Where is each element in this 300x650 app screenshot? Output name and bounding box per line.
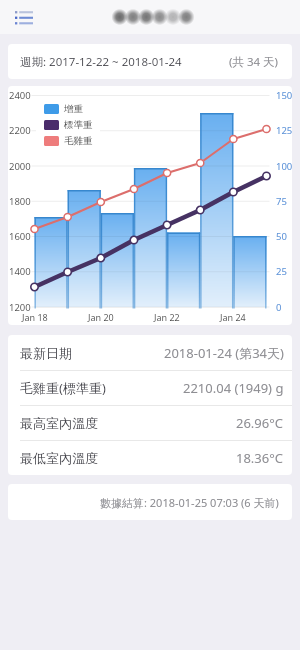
staticText: 125 bbox=[276, 124, 292, 137]
staticText: 標準重 bbox=[64, 119, 93, 131]
staticText: 毛雞重(標準重) bbox=[20, 379, 106, 397]
staticText: 25 bbox=[276, 265, 287, 278]
staticText: 2400 bbox=[9, 89, 31, 102]
button[interactable]: 毛雞重(標準重) bbox=[8, 370, 292, 405]
staticText: 1600 bbox=[9, 230, 31, 243]
staticText: 最新日期 bbox=[20, 345, 72, 361]
staticText: 增重 bbox=[64, 103, 83, 115]
staticText: 75 bbox=[276, 195, 287, 208]
staticText: 1200 bbox=[9, 301, 31, 314]
staticText: 最低室內溫度 bbox=[20, 450, 98, 466]
staticText: 0 bbox=[276, 301, 282, 314]
staticText: 2000 bbox=[9, 160, 31, 173]
staticText: 2210.04 (1949) g bbox=[183, 379, 284, 397]
staticText: Jan 20 bbox=[88, 311, 114, 323]
button[interactable]: Menu bbox=[9, 0, 39, 34]
staticText: 1400 bbox=[9, 265, 31, 278]
button[interactable]: 最高室內溫度 bbox=[8, 405, 292, 440]
staticText: Jan 22 bbox=[154, 311, 180, 323]
button[interactable]: 週期: 2017-12-22 ~ 2018-01-24 bbox=[8, 44, 292, 79]
staticText: Jan 24 bbox=[220, 311, 246, 323]
button[interactable]: 最新日期 bbox=[8, 335, 292, 370]
staticText: (共 34 天) bbox=[229, 54, 279, 70]
button[interactable]: 數據結算: 2018-01-25 07:03 (6 天前) bbox=[8, 484, 292, 520]
staticText: 2200 bbox=[9, 124, 31, 137]
staticText: Jan 18 bbox=[22, 311, 48, 323]
staticText: 數據結算: 2018-01-25 07:03 (6 天前) bbox=[100, 495, 279, 510]
staticText: 毛雞重 bbox=[64, 135, 93, 147]
staticText: 26.96°C bbox=[236, 414, 284, 432]
button[interactable]: 最低室內溫度 bbox=[8, 440, 292, 475]
staticText: 1800 bbox=[9, 195, 31, 208]
staticText: 週期: 2017-12-22 ~ 2018-01-24 bbox=[20, 54, 182, 70]
staticText: 18.36°C bbox=[236, 449, 284, 467]
staticText: 150 bbox=[276, 89, 292, 102]
staticText: 100 bbox=[276, 160, 292, 173]
staticText: 最高室內溫度 bbox=[20, 415, 98, 431]
staticText: 2018-01-24 (第34天) bbox=[164, 344, 284, 362]
staticText: 50 bbox=[276, 230, 287, 243]
